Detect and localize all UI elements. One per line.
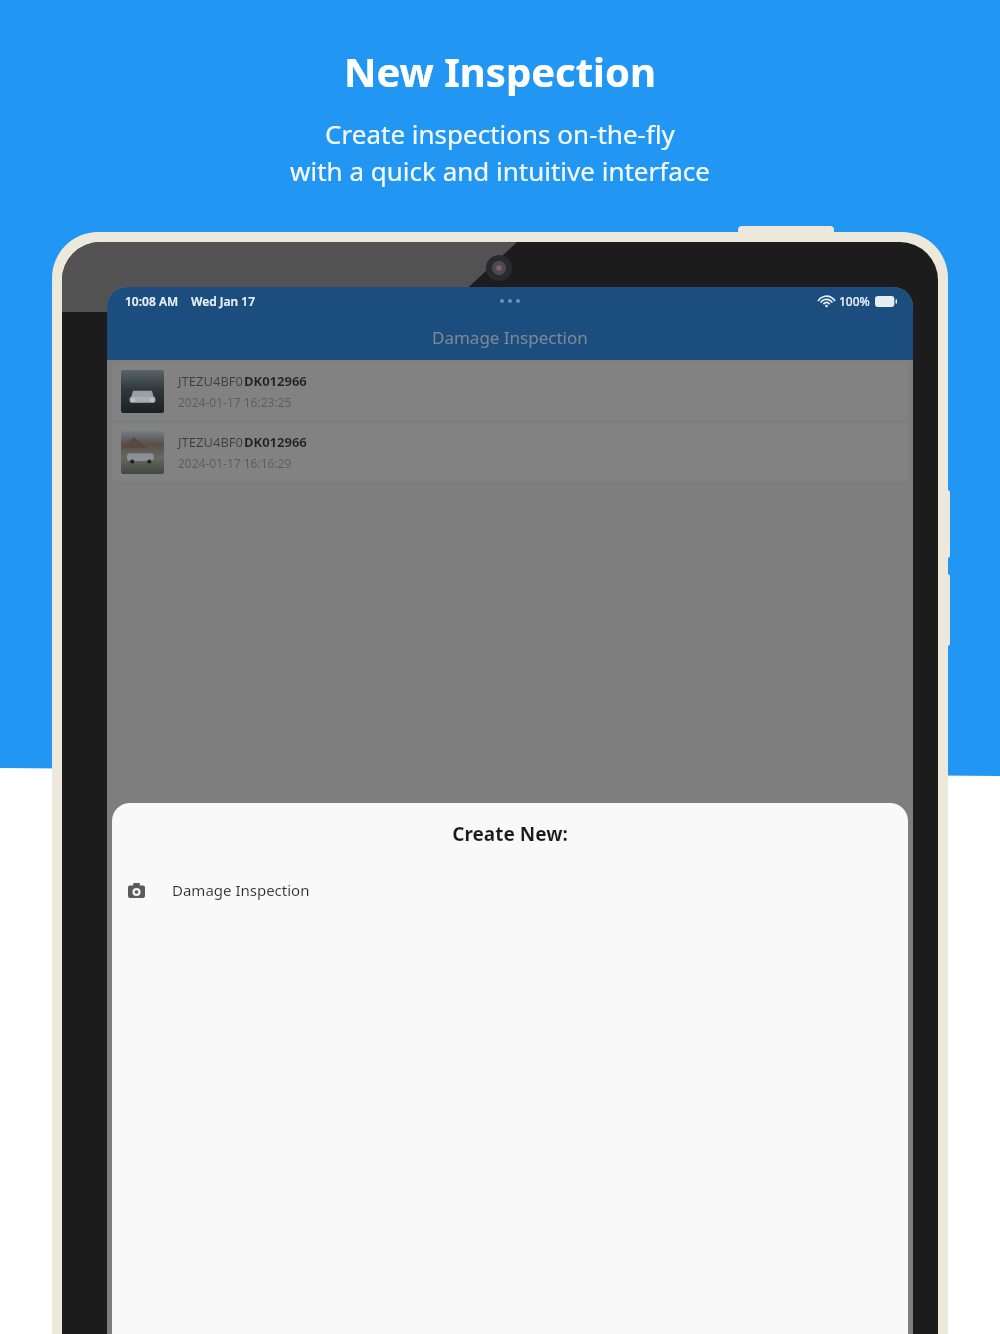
staticText: 10:08 AM: [125, 293, 179, 309]
staticText: 100%: [839, 293, 870, 309]
button[interactable]: JTEZU4BF0: [112, 362, 908, 420]
staticText: 2024-01-17 16:23:25: [178, 394, 292, 410]
button[interactable]: Camera: [112, 874, 908, 906]
other: Camera: [128, 883, 145, 898]
staticText: Wed Jan 17: [191, 293, 256, 309]
staticText: Damage Inspection: [432, 326, 588, 349]
button[interactable]: JTEZU4BF0: [112, 423, 908, 481]
staticText: 2024-01-17 16:16:29: [178, 455, 292, 471]
staticText: Create New:: [112, 821, 908, 847]
staticText: DK012966: [244, 433, 307, 451]
staticText: JTEZU4BF0: [178, 372, 244, 390]
staticText: JTEZU4BF0: [178, 433, 244, 451]
staticText: DK012966: [244, 372, 307, 390]
staticText: Damage Inspection: [172, 880, 310, 900]
staticText: Create inspections on-the-fly with a qui…: [290, 116, 710, 189]
staticText: New Inspection: [344, 44, 656, 98]
